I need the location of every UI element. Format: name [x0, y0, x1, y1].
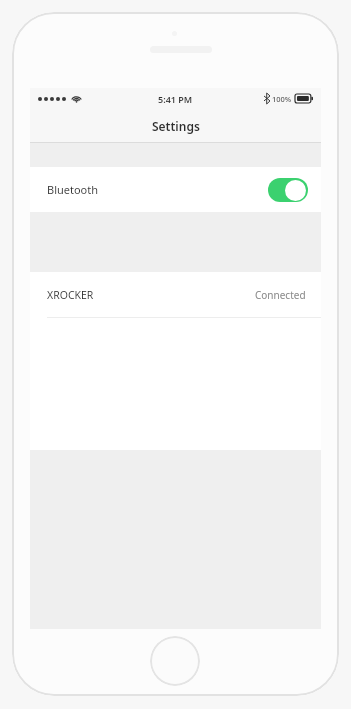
staticText: 100%	[272, 94, 292, 104]
button[interactable]: Bluetooth on	[268, 178, 308, 202]
button[interactable]: Bluetooth	[30, 167, 321, 212]
staticText: Settings	[152, 118, 200, 134]
staticText: XROCKER	[47, 288, 94, 302]
button[interactable]: Home	[150, 636, 200, 686]
staticText: 5:41 PM	[158, 93, 193, 105]
staticText: Bluetooth	[47, 182, 99, 197]
staticText: Connected	[255, 288, 306, 302]
button[interactable]: XROCKER	[30, 272, 321, 317]
